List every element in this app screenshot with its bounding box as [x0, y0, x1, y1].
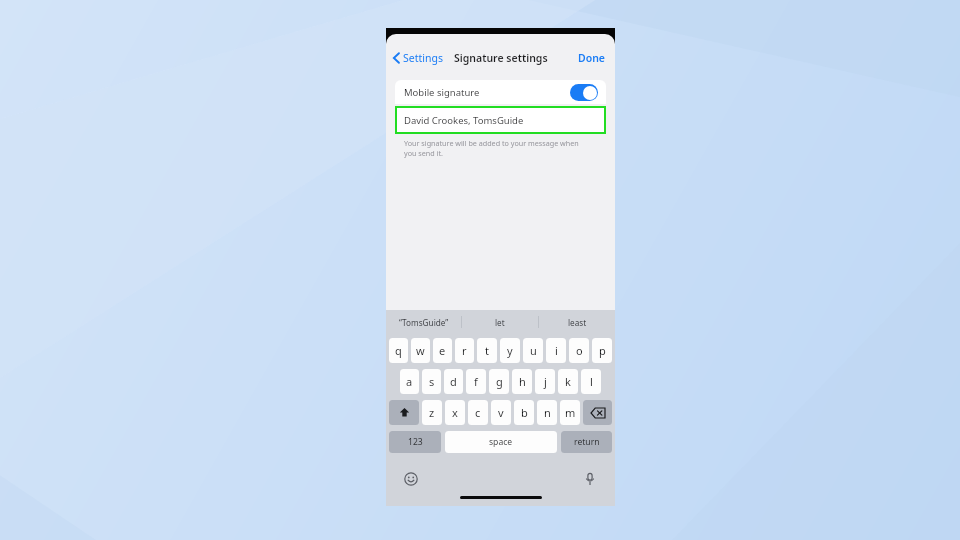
staticText: Mobile signature	[404, 86, 480, 99]
button[interactable]: r	[455, 338, 474, 363]
button[interactable]: d	[444, 369, 463, 394]
staticText: h	[519, 374, 526, 389]
staticText: let	[495, 317, 505, 328]
button[interactable]: Shift	[389, 400, 419, 425]
button[interactable]: l	[581, 369, 601, 394]
staticText: Your signature will be added to your mes…	[404, 138, 579, 148]
staticText: v	[498, 405, 504, 420]
staticText: Signature settings	[454, 51, 548, 65]
button[interactable]: m	[560, 400, 580, 425]
button[interactable]: h	[512, 369, 532, 394]
button[interactable]: 123	[389, 431, 441, 453]
button[interactable]: b	[514, 400, 534, 425]
button[interactable]: q	[389, 338, 408, 363]
button[interactable]: v	[491, 400, 511, 425]
staticText: f	[474, 374, 478, 389]
staticText: g	[496, 374, 503, 389]
button[interactable]: let	[462, 310, 538, 334]
staticText: a	[406, 374, 413, 389]
staticText: 123	[408, 436, 423, 448]
button[interactable]: k	[558, 369, 578, 394]
button[interactable]: w	[411, 338, 430, 363]
button[interactable]: David Crookes, TomsGuide	[395, 106, 606, 134]
button[interactable]: least	[539, 310, 615, 334]
button[interactable]: x	[445, 400, 465, 425]
staticText: y	[507, 343, 513, 358]
button[interactable]: a	[400, 369, 419, 394]
staticText: u	[530, 343, 537, 358]
button[interactable]: Mobile signature toggle, on	[570, 84, 598, 101]
button[interactable]: “TomsGuide”	[386, 310, 461, 334]
staticText: return	[574, 436, 600, 448]
button[interactable]: c	[468, 400, 488, 425]
button[interactable]: p	[592, 338, 612, 363]
staticText: o	[576, 343, 583, 358]
staticText: Done	[578, 51, 606, 65]
button[interactable]: f	[466, 369, 486, 394]
button[interactable]: o	[569, 338, 589, 363]
button[interactable]: s	[422, 369, 441, 394]
staticText: c	[475, 405, 481, 420]
button[interactable]: j	[535, 369, 555, 394]
staticText: least	[568, 317, 587, 328]
button[interactable]: return	[561, 431, 612, 453]
button[interactable]: u	[523, 338, 543, 363]
staticText: b	[521, 405, 528, 420]
staticText: i	[555, 343, 558, 358]
button[interactable]: y	[500, 338, 520, 363]
staticText: q	[395, 343, 402, 358]
staticText: Settings	[403, 51, 443, 65]
staticText: l	[590, 374, 593, 389]
button[interactable]: Mobile signature	[395, 80, 606, 104]
staticText: David Crookes, TomsGuide	[404, 114, 524, 127]
staticText: t	[485, 343, 489, 358]
button[interactable]: Dictation	[583, 472, 597, 486]
button[interactable]: g	[489, 369, 509, 394]
button[interactable]: i	[546, 338, 566, 363]
staticText: k	[565, 374, 571, 389]
button[interactable]: e	[433, 338, 452, 363]
staticText: w	[416, 343, 425, 358]
button[interactable]: Settings	[391, 47, 445, 69]
button[interactable]: space	[445, 431, 557, 453]
button[interactable]: z	[422, 400, 442, 425]
button[interactable]: t	[477, 338, 497, 363]
staticText: x	[452, 405, 458, 420]
button[interactable]: n	[537, 400, 557, 425]
staticText: d	[450, 374, 457, 389]
button[interactable]: Done	[575, 47, 609, 69]
staticText: z	[429, 405, 435, 420]
staticText: you send it.	[404, 148, 443, 158]
staticText: r	[462, 343, 467, 358]
staticText: e	[439, 343, 446, 358]
staticText: j	[544, 374, 547, 389]
staticText: “TomsGuide”	[399, 317, 449, 328]
staticText: s	[429, 374, 435, 389]
staticText: space	[489, 436, 513, 448]
staticText: m	[565, 405, 576, 420]
staticText: n	[544, 405, 551, 420]
staticText: p	[599, 343, 606, 358]
button[interactable]: Emoji keyboard	[404, 472, 418, 486]
button[interactable]: Backspace	[583, 400, 612, 425]
